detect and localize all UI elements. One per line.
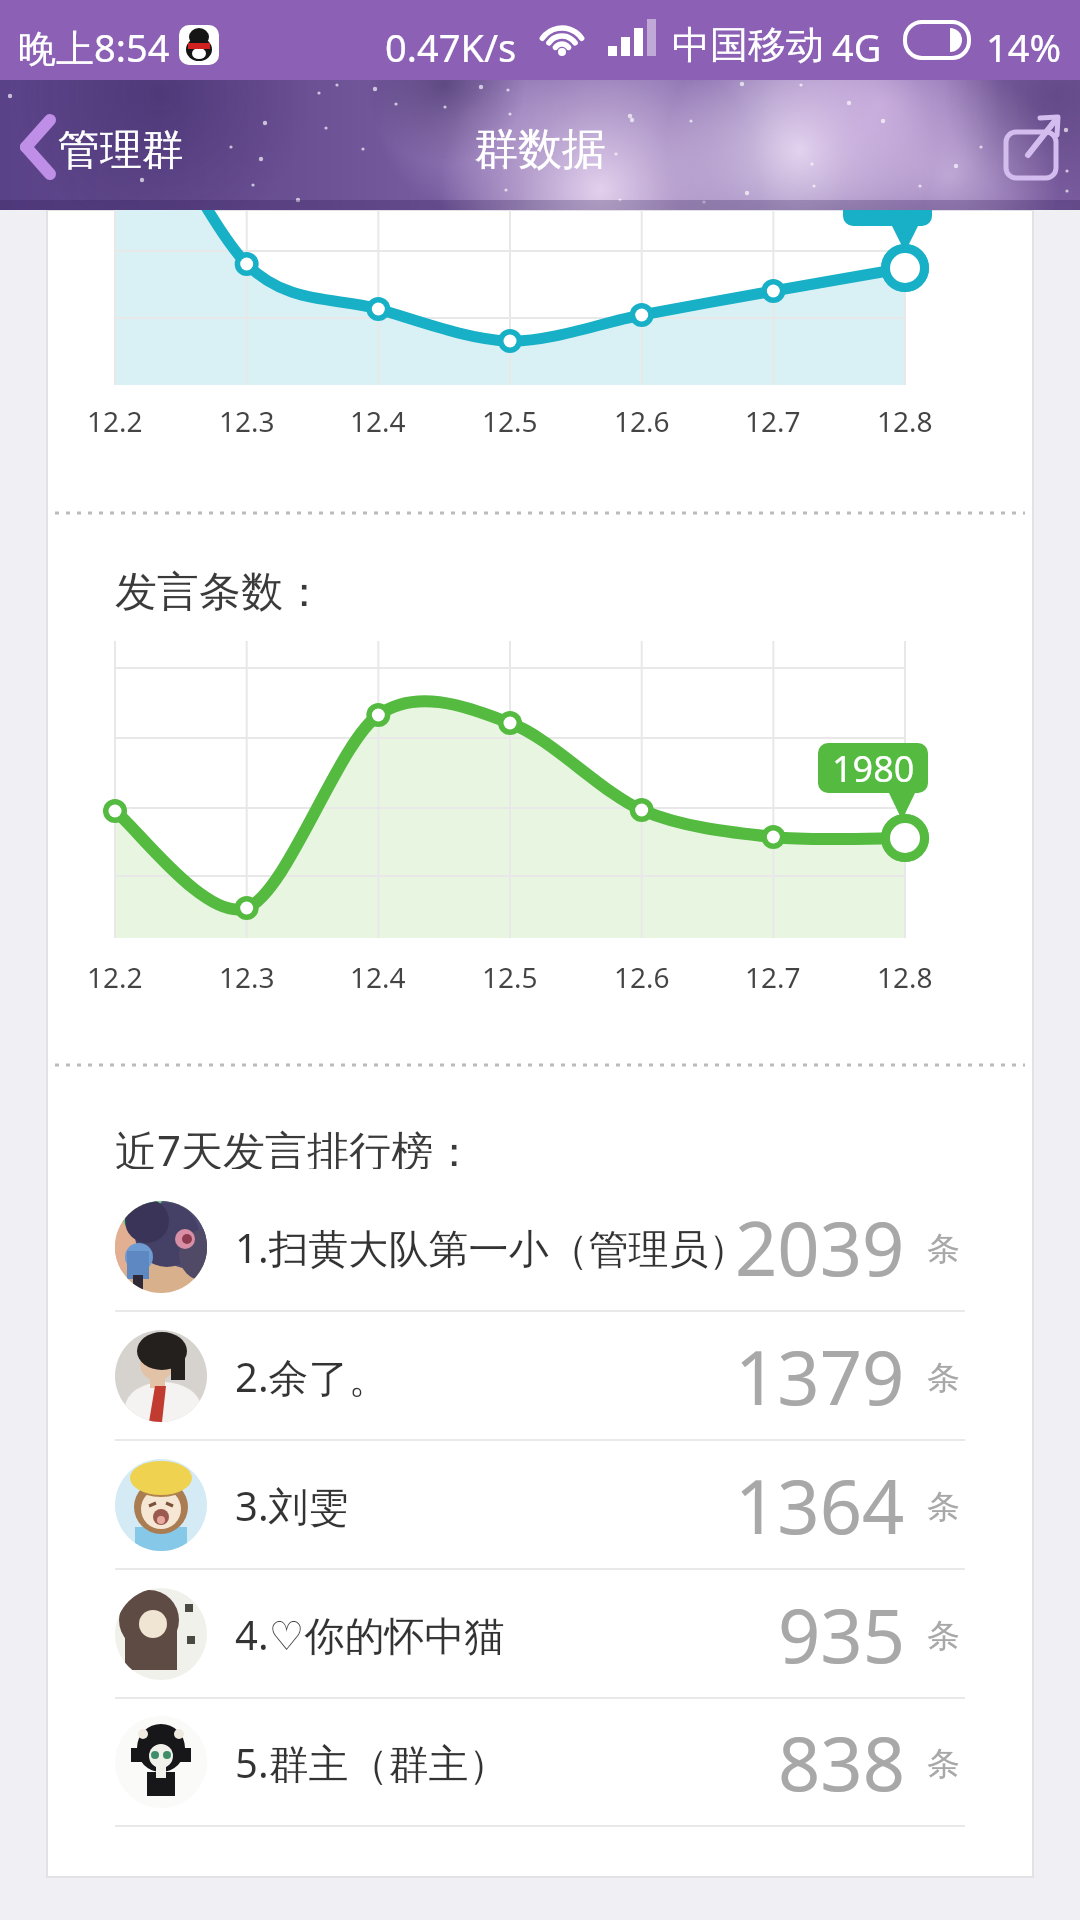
- button[interactable]: 管理群: [14, 112, 214, 182]
- staticText: 中国移动: [672, 21, 824, 69]
- button[interactable]: 3.刘雯: [60, 1442, 1020, 1568]
- staticText: 5.群主（群主）: [235, 1735, 509, 1790]
- staticText: 2.余了。: [235, 1349, 389, 1404]
- staticText: 1379: [735, 1326, 905, 1427]
- staticText: 2039: [735, 1197, 905, 1298]
- staticText: 12.2: [87, 958, 143, 994]
- staticText: 12.5: [482, 402, 538, 438]
- staticText: 条: [927, 1486, 960, 1528]
- staticText: 群数据: [474, 122, 606, 174]
- staticText: 晚上8:54: [18, 21, 170, 73]
- staticText: 12.8: [877, 402, 933, 438]
- staticText: 近7天发言排行榜：: [115, 1121, 476, 1169]
- staticText: 1980: [832, 744, 915, 793]
- staticText: 12.5: [482, 958, 538, 994]
- staticText: 12.7: [745, 958, 801, 994]
- staticText: 935: [778, 1584, 905, 1685]
- staticText: 12.6: [614, 958, 670, 994]
- staticText: 12.4: [350, 402, 406, 438]
- button[interactable]: [990, 110, 1070, 190]
- staticText: 4.♡你的怀中猫: [235, 1607, 505, 1662]
- staticText: 0.47K/s: [385, 21, 517, 73]
- staticText: 管理群: [14, 119, 184, 176]
- button[interactable]: 4.♡你的怀中猫: [60, 1571, 1020, 1697]
- staticText: 条: [927, 1228, 960, 1270]
- staticText: 12.8: [877, 958, 933, 994]
- button[interactable]: 5.群主（群主）: [60, 1699, 1020, 1825]
- staticText: 条: [927, 1357, 960, 1399]
- staticText: 12.4: [350, 958, 406, 994]
- staticText: 发言条数：: [115, 566, 325, 614]
- staticText: 12.3: [219, 958, 275, 994]
- staticText: 1364: [735, 1455, 905, 1556]
- staticText: 12.6: [614, 402, 670, 438]
- staticText: 838: [778, 1712, 905, 1813]
- staticText: 条: [927, 1615, 960, 1657]
- button[interactable]: 2.余了。: [60, 1313, 1020, 1439]
- staticText: 12.3: [219, 402, 275, 438]
- staticText: 12.2: [87, 402, 143, 438]
- staticText: 1.扫黄大队第一小（管理员）: [235, 1220, 749, 1275]
- staticText: 14%: [986, 21, 1062, 73]
- button[interactable]: 1.扫黄大队第一小（管理员）: [60, 1184, 1020, 1310]
- staticText: 3.刘雯: [235, 1478, 349, 1533]
- staticText: 条: [927, 1743, 960, 1785]
- staticText: 12.7: [745, 402, 801, 438]
- staticText: 4G: [832, 21, 882, 73]
